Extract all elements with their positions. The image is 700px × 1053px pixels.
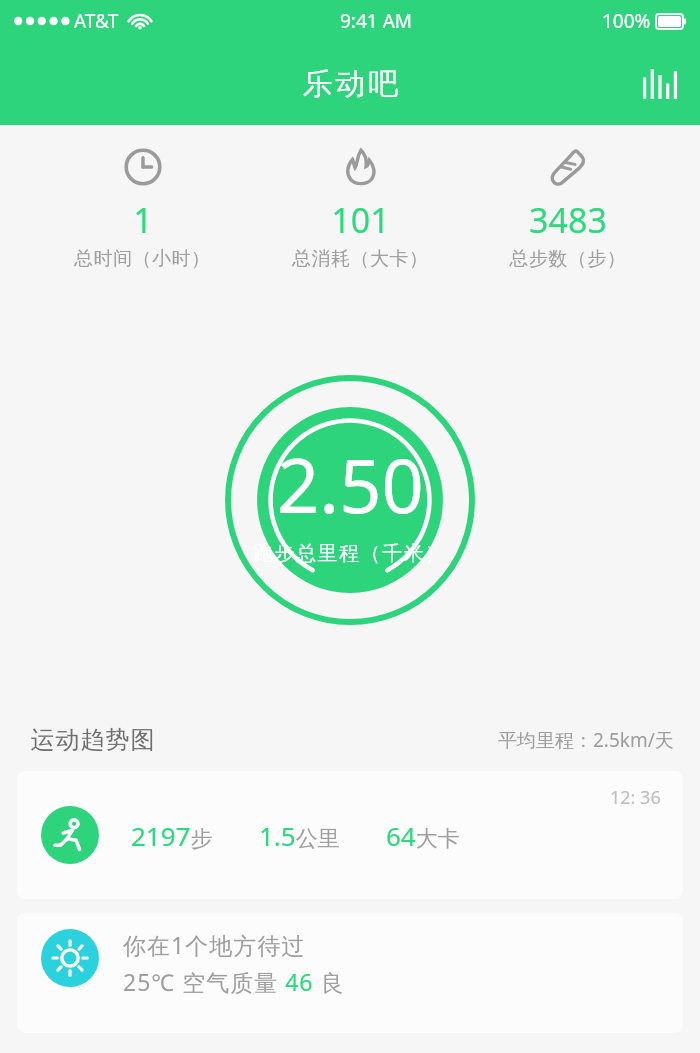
button[interactable]: Total steps <box>503 139 632 275</box>
staticText: 12: 36 <box>610 785 661 810</box>
staticText: 乐动吧 <box>301 65 400 103</box>
staticText: 你在1个地方待过 <box>123 929 306 960</box>
staticText: AT&T <box>74 8 119 34</box>
button[interactable]: Calories burned <box>286 139 435 275</box>
staticText: 总步数（步） <box>509 247 626 271</box>
staticText: 平均里程：2.5km/天 <box>498 727 674 753</box>
other: Total steps <box>546 145 590 189</box>
staticText: 1 <box>133 197 153 243</box>
staticText: 总时间（小时） <box>74 247 211 271</box>
button[interactable]: 你在1个地方待过 <box>17 913 683 1033</box>
staticText: 3483 <box>529 197 607 243</box>
staticText: 2197步 <box>131 818 213 853</box>
button[interactable]: Statistics <box>634 58 686 110</box>
other: Total time <box>122 146 164 188</box>
staticText: 运动趋势图 <box>30 725 155 755</box>
staticText: 2.50 <box>277 434 424 535</box>
staticText: 9:41 AM <box>340 8 413 34</box>
staticText: 64大卡 <box>386 818 460 853</box>
staticText: 101 <box>331 197 390 243</box>
staticText: 总消耗（大卡） <box>292 247 429 271</box>
staticText: 跑步总里程（千米） <box>253 541 447 566</box>
other: Calories burned <box>340 146 382 188</box>
staticText: 25℃ 空气质量 46 良 <box>123 966 345 997</box>
staticText: 1.5公里 <box>259 818 340 853</box>
button[interactable]: Total time <box>68 139 217 275</box>
staticText: 100% <box>602 8 651 34</box>
button[interactable]: 12: 36 <box>17 771 683 899</box>
